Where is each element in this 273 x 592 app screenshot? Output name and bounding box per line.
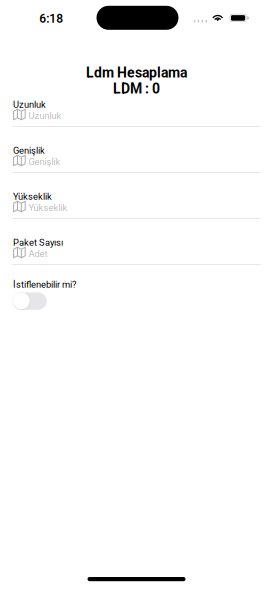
staticText: Genişlik [13,145,45,156]
staticText: Uzunluk [28,110,61,121]
staticText: İstiflenebilir mi? [13,279,76,290]
staticText: Ldm Hesaplama [86,64,187,81]
button[interactable]: İstiflenebilir mi? [13,292,47,310]
button[interactable]: Genişlik [12,154,261,169]
staticText: Yükseklik [28,202,67,213]
button[interactable]: Uzunluk [12,108,261,123]
button[interactable]: Adet [12,246,261,261]
staticText: Genişlik [28,156,60,167]
staticText: Yükseklik [13,191,52,202]
staticText: Paket Sayısı [13,237,63,248]
staticText: LDM : 0 [113,80,160,97]
staticText: Uzunluk [13,99,46,110]
staticText: 6:18 [39,12,63,26]
button[interactable]: Yükseklik [12,200,261,215]
staticText: Adet [28,248,47,259]
